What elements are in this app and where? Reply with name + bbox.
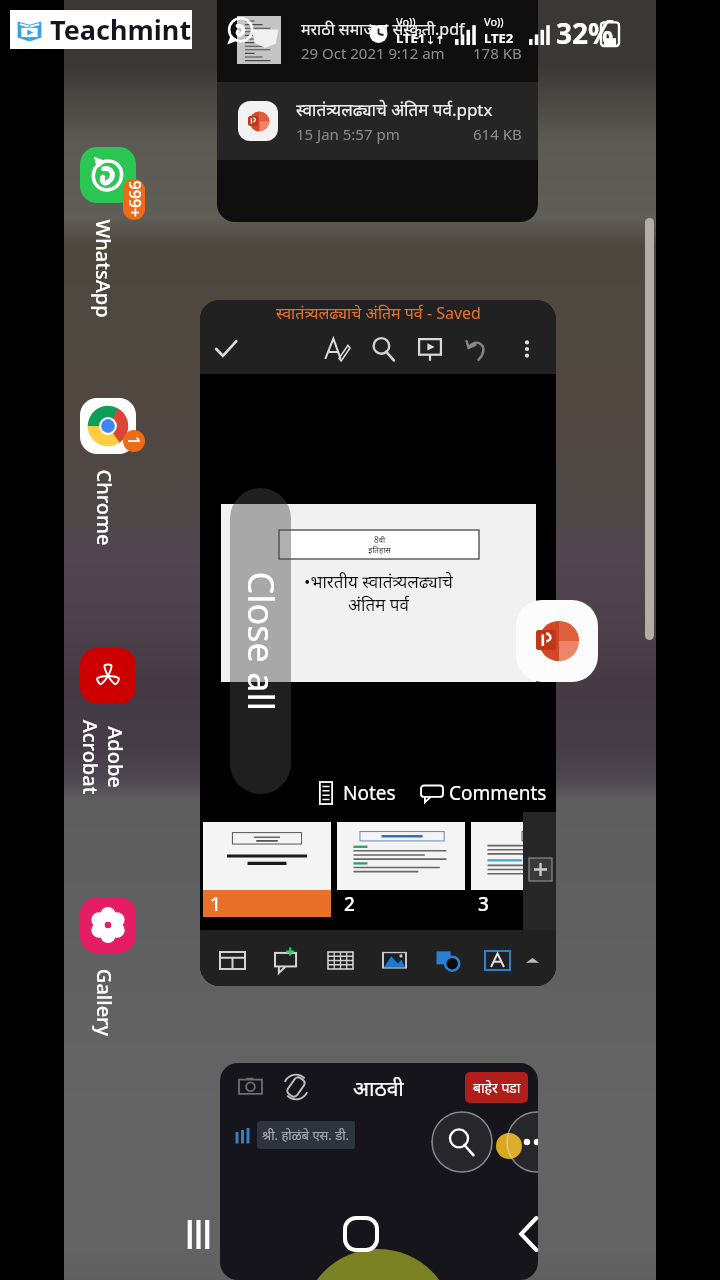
staticText: स्वातंत्र्यलढ्याचे अंतिम पर्व.pptx [296,98,493,121]
button[interactable]: Home [336,1209,386,1259]
staticText: Comments [449,780,547,806]
staticText: 1 [210,891,221,917]
button[interactable]: Word art [484,947,511,974]
button[interactable]: Comments [421,780,547,806]
staticText: Vo)) [396,14,416,29]
button[interactable]: Camera [220,1063,538,1280]
button[interactable]: Expand [526,954,539,967]
staticText: आठवी [353,1074,404,1103]
staticText: Adobe Acrobat [76,719,128,794]
staticText: 999+ [123,180,145,217]
staticText: LTE1 [396,29,426,47]
staticText: स्वातंत्र्यलढ्याचे अंतिम पर्व - Saved [276,302,481,324]
button[interactable]: Notes [317,780,396,806]
button[interactable]: Search [371,336,397,362]
staticText: 32% [556,14,614,52]
staticText: श्री. होळंबे एस. डी. [262,1126,350,1144]
staticText: 3 [478,891,489,917]
button[interactable]: बाहेर पडा [465,1072,528,1103]
staticText: Gallery [90,968,117,1036]
button[interactable]: Recents [173,1209,223,1259]
staticText: Vo)) [484,14,504,29]
button[interactable]: Gallery [80,897,140,1127]
button[interactable]: स्वातंत्र्यलढ्याचे अंतिम पर्व.pptx [238,82,522,160]
staticText: Notes [343,780,396,806]
button[interactable]: स्वातंत्र्यलढ्याचे अंतिम पर्व - Saved [200,300,556,986]
button[interactable]: Undo [465,336,491,362]
button[interactable]: More options [506,1111,538,1173]
staticText: Close all [236,571,285,711]
button[interactable]: Back [503,1209,553,1259]
staticText: Teachmint [50,11,192,48]
button[interactable]: Done [213,336,239,362]
staticText: 1 [123,436,145,446]
button[interactable]: Camera [239,1075,262,1098]
staticText: Chrome [90,469,117,545]
button[interactable]: Layout [219,947,246,974]
button[interactable]: मराठी समाज व संस्कृती.pdf [217,0,538,222]
staticText: 178 KB [473,43,522,63]
staticText: बाहेर पडा [473,1078,521,1097]
staticText: 8वी इतिहास [368,534,391,555]
staticText: 2 [344,891,355,917]
staticText: LTE2 [484,29,514,47]
button[interactable]: Shapes [436,947,463,974]
button[interactable]: Rotate screen [282,1073,310,1101]
staticText: 29 Oct 2021 9:12 am [301,43,445,63]
button[interactable]: Add slide [529,858,552,881]
button[interactable]: More options [516,338,538,360]
button[interactable]: मराठी समाज व संस्कृती.pdf [237,0,522,80]
button[interactable]: 3 [471,822,523,917]
button[interactable]: 999+ [80,147,140,377]
button[interactable]: Table [327,947,354,974]
button[interactable]: Text box [274,947,301,974]
button[interactable]: 2 [337,822,465,917]
staticText: WhatsApp [90,219,117,318]
button[interactable]: 1 [80,398,140,628]
button[interactable]: Search [431,1111,493,1173]
staticText: 15 Jan 5:57 pm [296,124,400,144]
button[interactable]: 1 [203,822,331,917]
staticText: ↓↑ [426,34,445,47]
staticText: 614 KB [473,124,522,144]
button[interactable]: Adobe Acrobat [80,648,140,878]
button[interactable]: Draw [324,336,350,362]
staticText: मराठी समाज व संस्कृती.pdf [301,18,465,40]
button[interactable]: Present [417,336,443,362]
button[interactable]: Picture [381,947,408,974]
staticText: •भारतीय स्वातंत्र्यलढ्याचे अंतिम पर्व [304,570,453,616]
button[interactable]: Close all [230,488,291,794]
